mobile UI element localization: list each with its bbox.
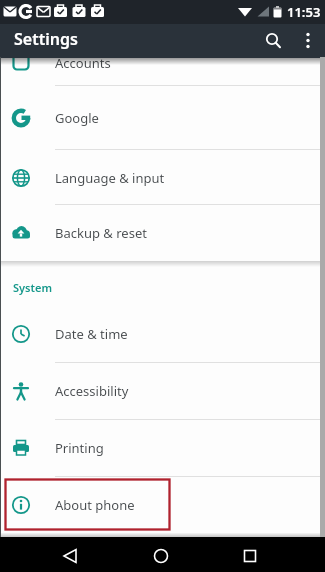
button[interactable]: Date & time [0,306,325,362]
button[interactable]: Accounts [0,58,325,86]
staticText: Accounts [55,58,111,72]
button[interactable] [0,537,109,572]
button[interactable]: Backup & reset [0,205,325,261]
staticText: Language & input [55,169,165,187]
staticText: Google [55,109,99,127]
staticText: Date & time [55,325,128,343]
button[interactable]: Google [0,86,325,150]
button[interactable]: Language & input [0,150,325,205]
button[interactable]: About phone [0,476,325,533]
staticText: 11:53 [287,3,321,21]
button[interactable]: Printing [0,419,325,476]
staticText: Settings [14,28,78,50]
button[interactable] [296,26,320,50]
button[interactable] [109,537,217,572]
staticText: Accessibility [55,382,129,400]
staticText: System [13,280,52,295]
button[interactable] [258,26,286,54]
staticText: Backup & reset [55,224,147,242]
staticText: About phone [55,496,135,514]
button[interactable]: Accessibility [0,362,325,419]
staticText: Printing [55,439,104,457]
button[interactable] [217,537,325,572]
